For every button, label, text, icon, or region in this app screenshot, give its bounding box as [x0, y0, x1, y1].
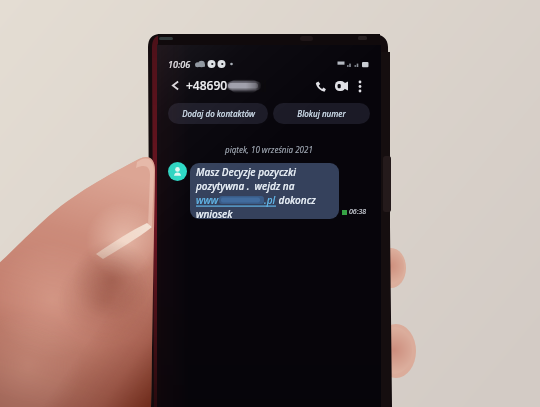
button[interactable]: Video call: [331, 76, 351, 96]
staticText: +48690: [186, 77, 228, 93]
staticText: Masz Decyzje pozyczki: [196, 165, 296, 179]
button[interactable]: Call: [310, 76, 330, 96]
staticText: www: [196, 193, 219, 207]
staticText: .pl: [264, 193, 276, 207]
staticText: dokoncz: [276, 193, 316, 207]
staticText: 10:06: [168, 58, 191, 70]
button[interactable]: Masz Decyzje pozyczki: [190, 163, 339, 219]
staticText: piątek, 10 września 2021: [225, 144, 313, 155]
staticText: wniosek: [196, 207, 233, 219]
button[interactable]: Dodaj do kontaktów: [168, 103, 268, 124]
staticText: Blokuj numer: [297, 108, 346, 119]
staticText: Dodaj do kontaktów: [182, 108, 255, 119]
button[interactable]: More options: [352, 78, 368, 94]
button[interactable]: Blokuj numer: [273, 103, 370, 124]
staticText: pozytywna . wejdz na: [196, 179, 295, 193]
button[interactable]: Back: [167, 77, 183, 93]
staticText: 06:38: [349, 207, 367, 217]
